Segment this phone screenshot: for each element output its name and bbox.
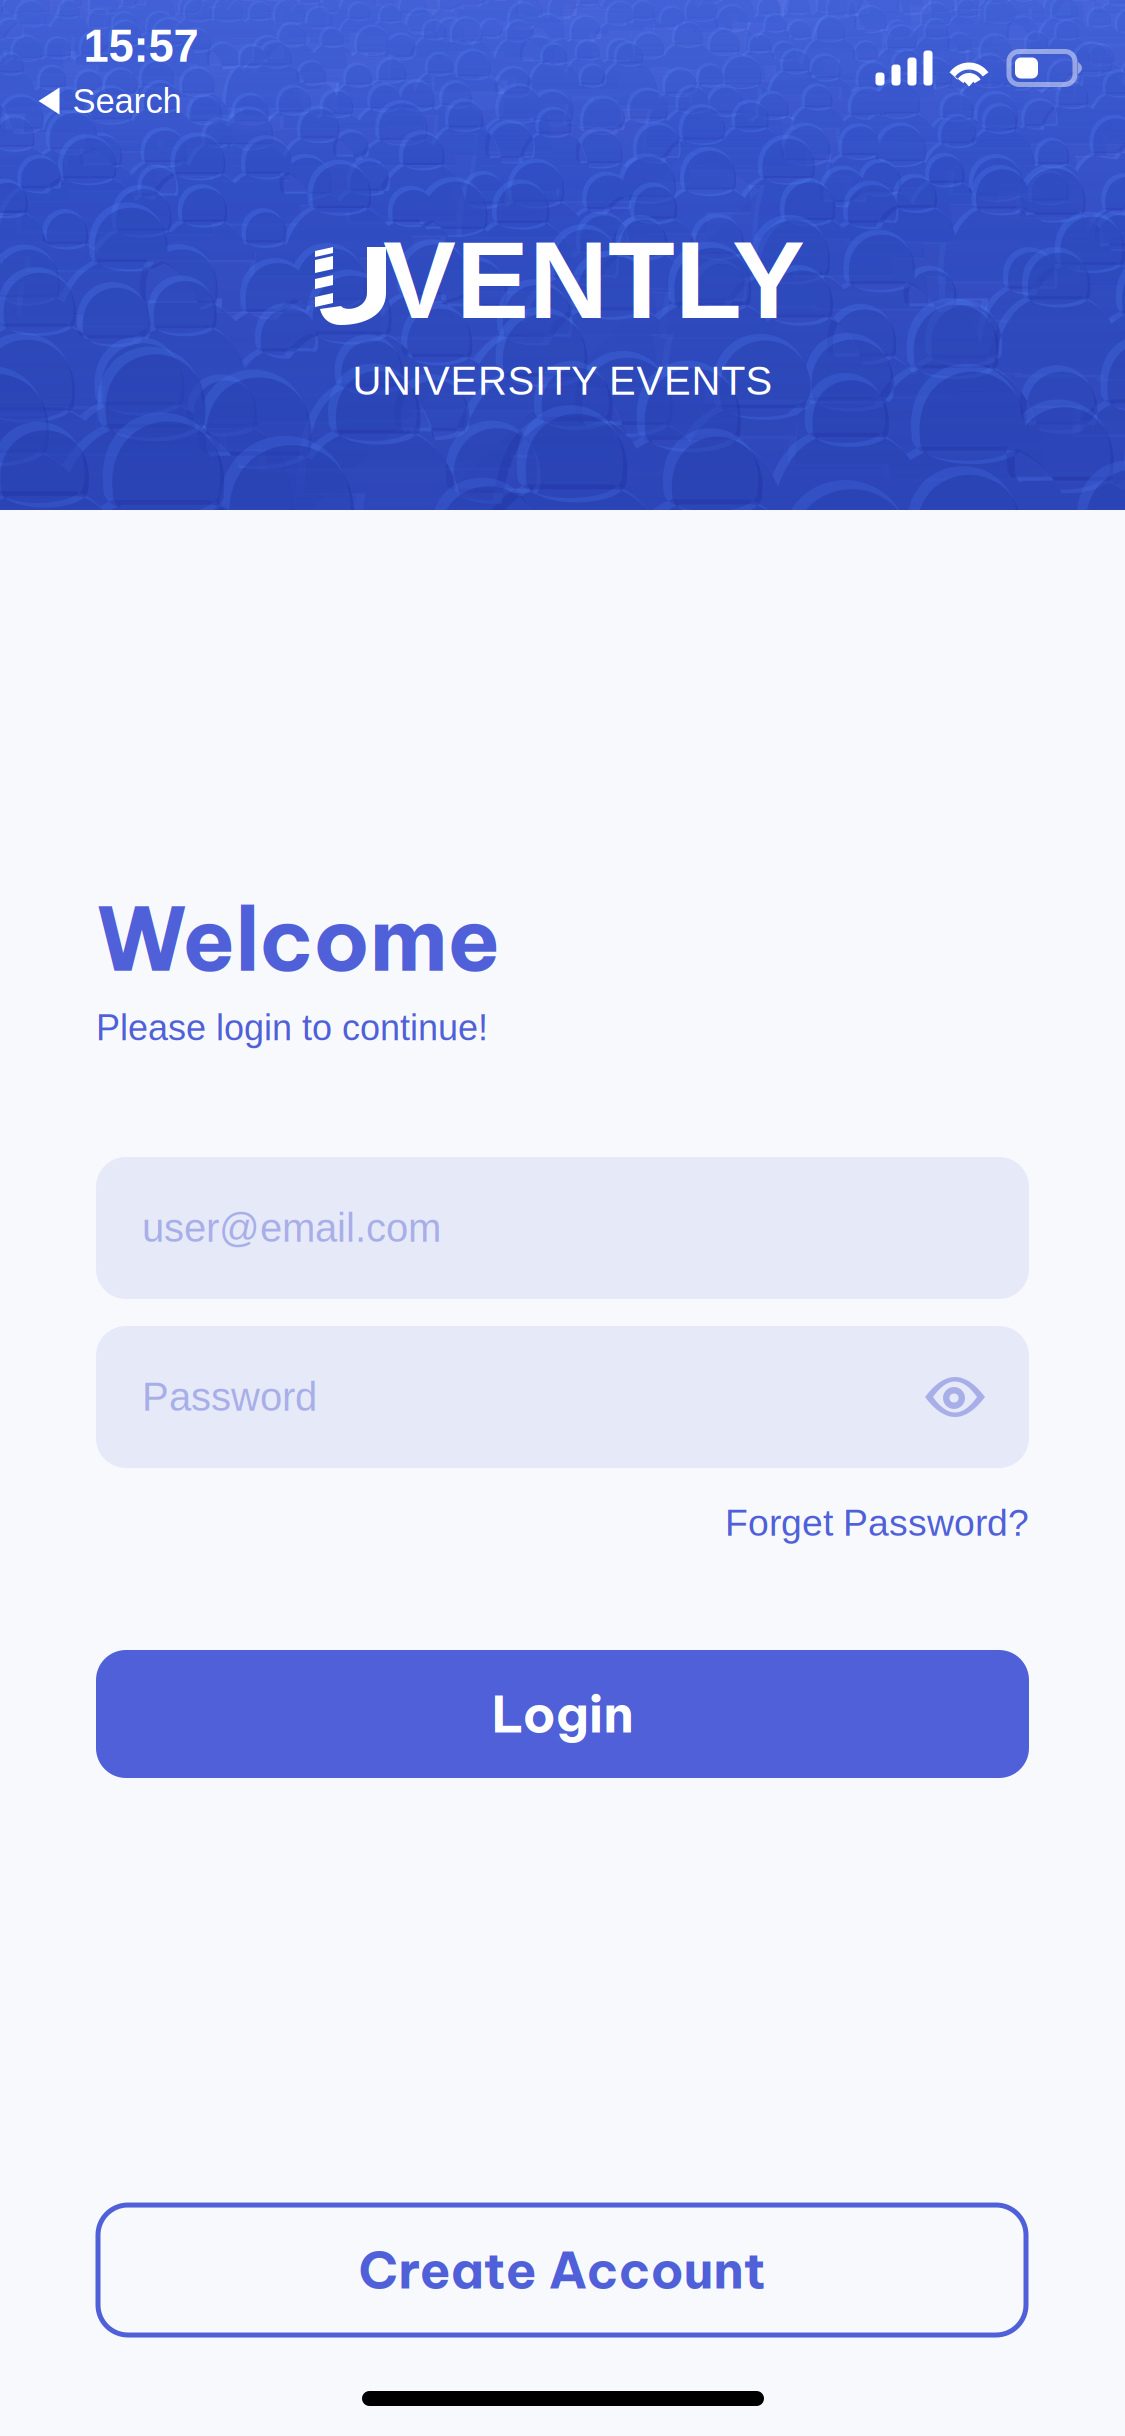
staticText: Search bbox=[72, 82, 181, 120]
button[interactable]: Forget Password? bbox=[725, 1502, 1029, 1544]
staticText: Login bbox=[491, 1682, 633, 1746]
staticText: Please login to continue! bbox=[96, 1008, 488, 1048]
staticText: VENTLY bbox=[383, 219, 805, 341]
staticText: Create Account bbox=[358, 2238, 765, 2302]
button[interactable]: Login bbox=[96, 1650, 1029, 1778]
button[interactable]: Create Account bbox=[98, 2205, 1026, 2335]
button[interactable]: Show password bbox=[923, 1326, 987, 1468]
button[interactable]: Search bbox=[38, 74, 181, 128]
staticText: UNIVERSITY EVENTS bbox=[352, 359, 772, 403]
staticText: Welcome bbox=[96, 884, 501, 994]
staticText: Forget Password? bbox=[725, 1502, 1029, 1544]
staticText: Password bbox=[142, 1375, 317, 1419]
staticText: 15:57 bbox=[83, 21, 198, 71]
staticText: user@email.com bbox=[142, 1206, 441, 1250]
